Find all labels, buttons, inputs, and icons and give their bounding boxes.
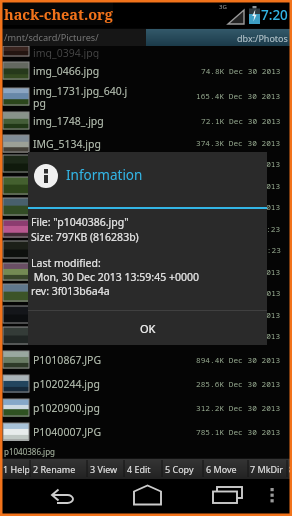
staticText: 1 Help — [3, 463, 31, 475]
button[interactable]: P1010867.JPG — [0, 348, 292, 372]
button[interactable]: img_1731.jpg_640.j pg — [0, 83, 292, 110]
staticText: 5 Copy — [165, 463, 194, 475]
staticText: 8 — [289, 463, 292, 475]
staticText: File: "p1040386.jpg" — [31, 215, 129, 229]
staticText: Size: 797KB (816283b) — [31, 230, 139, 244]
button[interactable]: 95.4K Dec 30 13:23 — [0, 218, 292, 240]
staticText: 7 MkDir — [250, 463, 284, 475]
staticText: 3G — [219, 3, 227, 11]
button[interactable]: 7 MkDir — [250, 458, 284, 479]
staticText: P1010867.JPG — [33, 353, 102, 367]
button[interactable]: 301.5K Dec 30 2013 — [0, 196, 292, 218]
staticText: hack-cheat.org — [4, 4, 113, 24]
staticText: 165.4K Dec 30 2013 — [196, 91, 281, 102]
staticText: 285.6K Dec 30 2013 — [196, 379, 281, 390]
button[interactable]: 87.3K Dec 30 2013 — [0, 282, 292, 304]
button[interactable] — [210, 483, 248, 511]
button[interactable] — [130, 483, 166, 511]
button[interactable]: P1040007.JPG — [0, 420, 292, 444]
staticText: rev: 3f013b6a4a — [31, 284, 110, 298]
button[interactable] — [44, 483, 80, 511]
button[interactable]: img_0394.jpg — [0, 46, 292, 59]
button[interactable]: 5 Copy — [165, 458, 194, 479]
button[interactable]: p1020900.jpg — [0, 396, 292, 420]
staticText: OK — [140, 321, 156, 336]
staticText: Mon, 30 Dec 2013 13:59:45 +0000 — [31, 270, 199, 284]
staticText: 374.3K Dec 30 2013 — [196, 138, 281, 149]
staticText: 440.1K Dec 30 2013 — [196, 267, 281, 278]
button[interactable]: 120.6K Dec 30 2013 — [0, 304, 292, 326]
staticText: 301.5K Dec 30 2013 — [196, 202, 281, 213]
staticText: dbx:/Photos — [237, 32, 288, 44]
staticText: 6 Move — [206, 463, 237, 475]
staticText: 2 Rename — [33, 463, 76, 475]
staticText: p1020244.jpg — [33, 377, 100, 391]
staticText: 72.1K Dec 30 2013 — [201, 116, 281, 127]
button[interactable]: IMG_5134.jpg — [0, 132, 292, 155]
button[interactable]: img_0466.jpg — [0, 59, 292, 83]
button[interactable]: OK — [28, 311, 267, 345]
button[interactable]: p1020244.jpg — [0, 372, 292, 396]
button[interactable]: 1 Help — [3, 458, 31, 479]
staticText: 7:20 — [261, 6, 288, 24]
staticText: 894.4K Dec 30 2013 — [196, 355, 281, 366]
button[interactable]: 256.0K Dec 30 2013 — [0, 325, 292, 347]
staticText: 95.4K Dec 30 13:23 — [196, 224, 281, 235]
staticText: 785.1K Dec 30 2013 — [196, 427, 281, 438]
staticText: img_0466.jpg — [33, 64, 100, 78]
button[interactable] — [264, 485, 280, 509]
button[interactable]: 188.2K Dec 30 2013 — [0, 175, 292, 197]
staticText: p1040386.jpg — [4, 446, 55, 457]
button[interactable]: 214.7K Dec 30 2013 — [0, 153, 292, 175]
button[interactable]: 2 Rename — [33, 458, 76, 479]
button[interactable]: 4 Edit — [127, 458, 151, 479]
staticText: Information — [66, 166, 143, 184]
staticText: Last modified: — [31, 256, 101, 270]
staticText: img_1748_.jpg — [33, 114, 104, 128]
staticText: P1040007.JPG — [33, 425, 102, 439]
staticText: 74.8K Dec 30 2013 — [201, 66, 281, 77]
button[interactable]: img_1748_.jpg — [0, 110, 292, 132]
staticText: 87.3K Dec 30 2013 — [201, 288, 281, 299]
staticText: 312.2K Dec 30 2013 — [196, 403, 281, 414]
button[interactable]: /mnt/sdcard/Pictures/ — [0, 29, 146, 46]
button[interactable]: 440.1K Dec 30 2013 — [0, 261, 292, 283]
staticText: 120.6K Dec 30 2013 — [196, 310, 281, 321]
button[interactable]: 6 Move — [206, 458, 237, 479]
button[interactable]: 3 View — [90, 458, 118, 479]
button[interactable]: 8 — [289, 458, 292, 479]
staticText: 4 Edit — [127, 463, 151, 475]
staticText: 214.7K Dec 30 2013 — [196, 159, 281, 170]
staticText: img_0394.jpg — [33, 46, 100, 59]
staticText: /mnt/sdcard/Pictures/ — [4, 31, 99, 44]
staticText: 3 View — [90, 463, 118, 475]
staticText: p1020900.jpg — [33, 401, 100, 415]
staticText: 256.0K Dec 30 2013 — [196, 331, 281, 342]
staticText: 102.8K Dec 30 13:23 — [192, 245, 281, 256]
button[interactable]: dbx:/Photos — [146, 29, 292, 46]
staticText: 188.2K Dec 30 2013 — [196, 181, 281, 192]
button[interactable]: 102.8K Dec 30 13:23 — [0, 239, 292, 261]
staticText: IMG_5134.jpg — [33, 137, 101, 151]
staticText: img_1731.jpg_640.j pg — [33, 84, 128, 110]
